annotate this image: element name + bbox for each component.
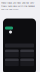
staticText: These ideas are new and not very (1, 1, 34, 4)
staticText: freely available with the handset (1, 4, 35, 8)
staticText: and the app store. (1, 7, 19, 11)
